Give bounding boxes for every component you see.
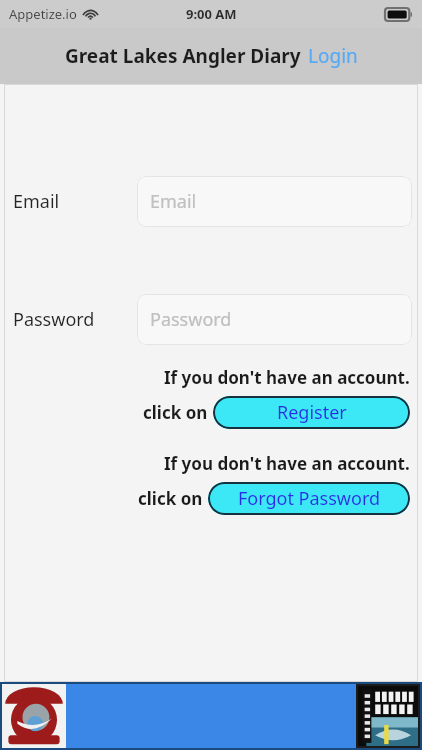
staticText: If you don't have an account. bbox=[164, 366, 410, 389]
staticText: Register bbox=[277, 400, 347, 425]
staticText: Password bbox=[150, 307, 232, 332]
staticText: Login bbox=[308, 43, 358, 69]
button[interactable]: Login bbox=[308, 43, 358, 69]
button[interactable]: Password bbox=[137, 294, 412, 345]
staticText: click on bbox=[138, 487, 203, 510]
staticText: Password bbox=[13, 307, 95, 332]
button[interactable]: Advertisement banner bbox=[0, 682, 422, 750]
staticText: click on bbox=[143, 401, 208, 424]
staticText: Email bbox=[150, 189, 197, 214]
staticText: Great Lakes Angler Diary bbox=[65, 43, 301, 69]
staticText: 9:00 AM bbox=[186, 5, 237, 23]
button[interactable]: Email bbox=[137, 176, 412, 227]
staticText: Appetize.io bbox=[9, 5, 77, 23]
staticText: Email bbox=[13, 189, 60, 214]
staticText: Forgot Password bbox=[238, 486, 381, 511]
button[interactable]: Register bbox=[213, 396, 410, 429]
staticText: If you don't have an account. bbox=[164, 452, 410, 475]
button[interactable]: Forgot Password bbox=[208, 482, 410, 515]
